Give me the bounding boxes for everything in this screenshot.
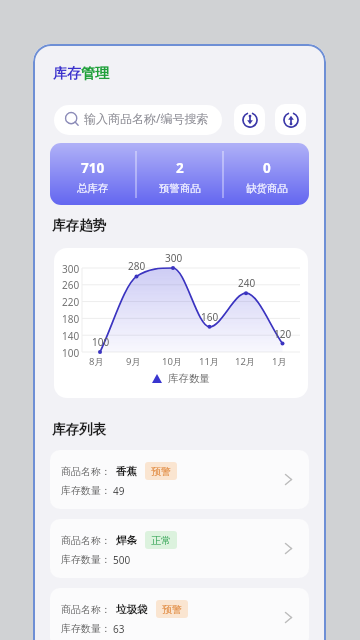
staticText: 香蕉 bbox=[116, 465, 137, 478]
staticText: 8月 bbox=[89, 355, 104, 368]
staticText: 9月 bbox=[126, 355, 141, 368]
staticText: 商品名称： bbox=[61, 603, 111, 616]
staticText: 库存数量： bbox=[61, 553, 111, 566]
staticText: 10月 bbox=[162, 355, 183, 368]
staticText: 1月 bbox=[272, 355, 287, 368]
staticText: 140 bbox=[62, 329, 80, 343]
staticText: 预警 bbox=[151, 465, 171, 478]
staticText: 220 bbox=[62, 295, 80, 309]
staticText: 500 bbox=[113, 553, 131, 567]
staticText: 63 bbox=[113, 622, 125, 636]
button[interactable]: Import bbox=[234, 104, 265, 135]
staticText: 预警 bbox=[162, 603, 182, 616]
staticText: 商品名称： bbox=[61, 534, 111, 547]
button[interactable]: 0 bbox=[224, 154, 309, 195]
staticText: 160 bbox=[201, 310, 219, 324]
button[interactable]: 2 bbox=[137, 154, 222, 195]
staticText: 预警商品 bbox=[159, 182, 201, 195]
staticText: 垃圾袋 bbox=[116, 603, 148, 616]
staticText: 库存列表 bbox=[52, 421, 106, 438]
button[interactable]: Export bbox=[275, 104, 306, 135]
staticText: 缺货商品 bbox=[246, 182, 288, 195]
staticText: 300 bbox=[165, 251, 183, 265]
staticText: 输入商品名称/编号搜索 bbox=[84, 110, 209, 126]
staticText: 库存趋势 bbox=[52, 217, 106, 234]
button[interactable]: 输入商品名称/编号搜索 bbox=[54, 105, 222, 135]
staticText: 商品名称： bbox=[61, 465, 111, 478]
button[interactable]: 710 bbox=[50, 154, 135, 195]
staticText: 总库存 bbox=[77, 182, 109, 195]
staticText: 12月 bbox=[235, 355, 256, 368]
staticText: 100 bbox=[62, 346, 80, 360]
button[interactable]: 商品名称： bbox=[50, 519, 309, 578]
staticText: 710 bbox=[81, 159, 105, 177]
staticText: 280 bbox=[128, 259, 146, 273]
staticText: 正常 bbox=[151, 534, 171, 547]
staticText: 0 bbox=[263, 159, 271, 177]
staticText: 260 bbox=[62, 278, 80, 292]
button[interactable]: 商品名称： bbox=[50, 450, 309, 509]
staticText: 库存数量 bbox=[168, 372, 210, 385]
staticText: 库存管理 bbox=[53, 65, 109, 83]
staticText: 100 bbox=[92, 335, 110, 349]
button[interactable]: 商品名称： bbox=[50, 588, 309, 640]
staticText: 焊条 bbox=[116, 534, 137, 547]
staticText: 49 bbox=[113, 484, 125, 498]
staticText: 240 bbox=[238, 276, 256, 290]
staticText: 2 bbox=[176, 159, 184, 177]
staticText: 300 bbox=[62, 262, 80, 276]
staticText: 库存数量： bbox=[61, 622, 111, 635]
staticText: 180 bbox=[62, 312, 80, 326]
staticText: 120 bbox=[274, 327, 292, 341]
staticText: 库存数量： bbox=[61, 484, 111, 497]
staticText: 11月 bbox=[199, 355, 220, 368]
